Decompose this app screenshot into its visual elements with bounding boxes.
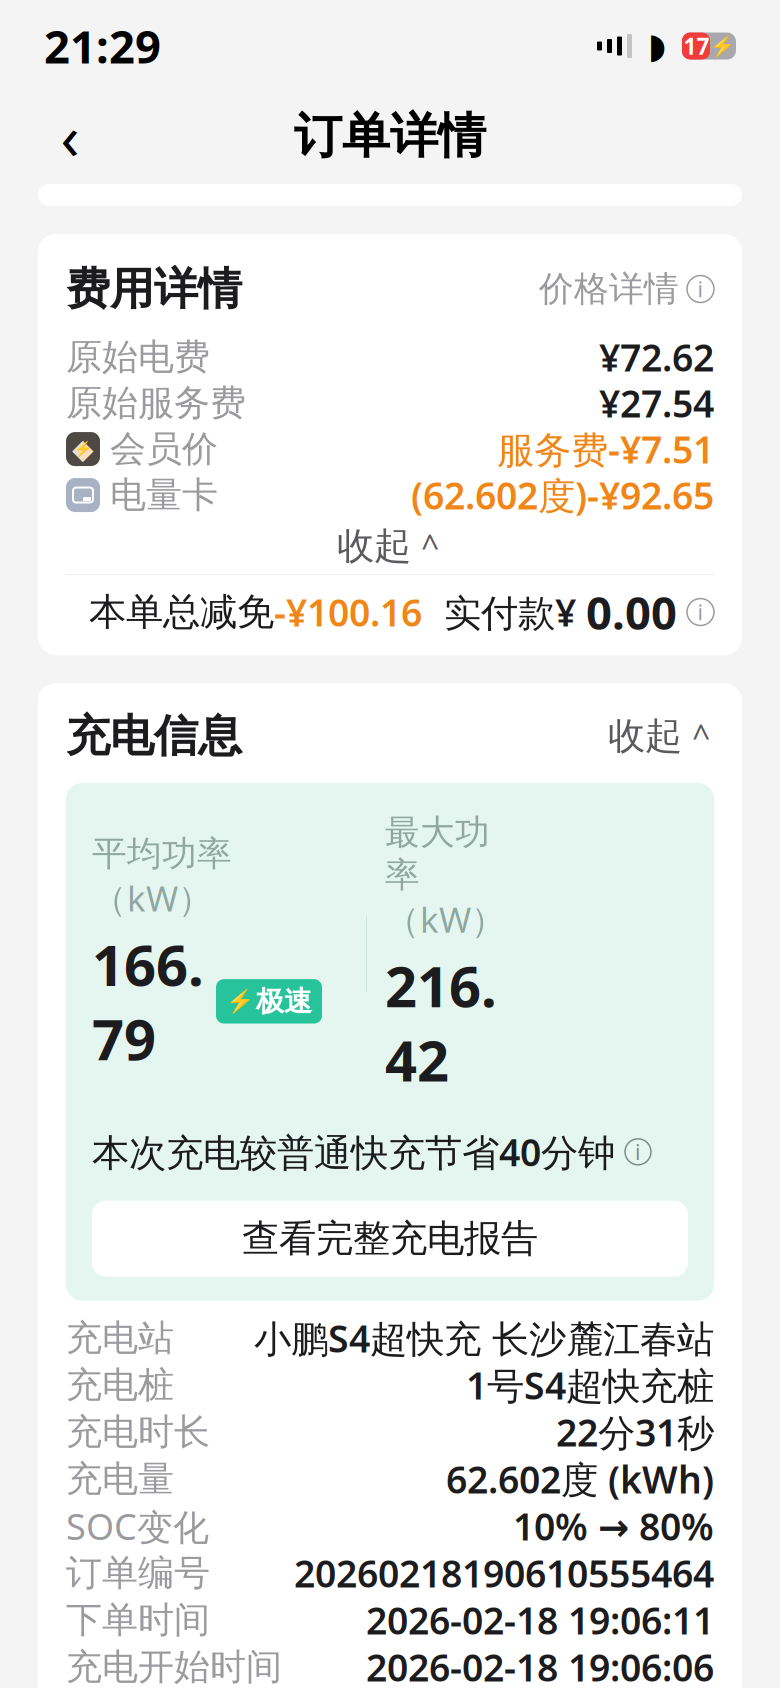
staticText: 价格详情 [539, 268, 679, 310]
staticText: 原始电费 [66, 335, 210, 379]
staticText: 166.79 [92, 927, 204, 1076]
staticText: 费用详情 [66, 262, 242, 316]
staticText: ¥72.62 [599, 332, 714, 382]
staticText: -¥100.16 [274, 587, 422, 637]
staticText: 订单编号 [66, 1551, 210, 1595]
staticText: 1号S4超快充桩 [466, 1360, 714, 1410]
staticText: 会员价 [110, 427, 218, 471]
staticText: 62.602度 (kWh) [446, 1454, 714, 1504]
staticText: ⚡ [226, 988, 254, 1014]
staticText: i [635, 1138, 641, 1166]
staticText: ^ [421, 525, 439, 567]
staticText: 充电时长 [66, 1410, 210, 1454]
staticText: 本单总减免 [89, 589, 274, 635]
staticText: (62.602度)-¥92.65 [411, 470, 714, 520]
staticText: 20260218190610555464 [294, 1548, 714, 1598]
staticText: SOC变化 [66, 1502, 209, 1550]
staticText: 0.00 [586, 582, 677, 642]
staticText: 收起 [608, 713, 682, 759]
staticText: 2026-02-18 19:06:06 [366, 1642, 714, 1688]
staticText: 充电量 [66, 1457, 174, 1501]
staticText: 充电站 [66, 1316, 174, 1360]
staticText: 充电桩 [66, 1363, 174, 1407]
staticText: ◗ [648, 26, 666, 66]
staticText: ‹ [60, 95, 79, 177]
staticText: i [697, 598, 703, 626]
button[interactable]: 价格详情 [539, 268, 714, 310]
staticText: 收起 [337, 523, 411, 569]
staticText: ◆ [72, 433, 94, 465]
staticText: 本次充电较普通快充节省40分钟 [92, 1127, 615, 1177]
staticText: ¥27.54 [599, 378, 714, 428]
staticText: 21:29 [44, 16, 161, 76]
staticText: 订单详情 [294, 106, 486, 165]
staticText: 小鹏S4超快充 长沙麓江春站 [254, 1313, 714, 1363]
staticText: 216.42 [385, 948, 497, 1097]
staticText: 极速 [256, 984, 312, 1019]
staticText: 17 [683, 31, 709, 61]
staticText: 充电开始时间 [66, 1645, 282, 1688]
staticText: 电量卡 [110, 473, 218, 517]
staticText: 查看完整充电报告 [242, 1216, 538, 1262]
button[interactable]: 返回 [38, 104, 102, 168]
staticText: 最大功率（kW） [385, 811, 506, 942]
staticText: 平均功率（kW） [92, 832, 232, 921]
staticText: 下单时间 [66, 1598, 210, 1642]
staticText: ⚡ [74, 441, 92, 457]
staticText: 10% → 80% [513, 1501, 714, 1551]
button[interactable]: 收起 [608, 713, 714, 759]
staticText: 2026-02-18 19:06:11 [366, 1595, 714, 1645]
staticText: 充电信息 [66, 709, 242, 763]
button[interactable]: 收起 [66, 518, 714, 574]
staticText: 实付款¥ [422, 587, 586, 637]
staticText: ^ [692, 715, 710, 757]
staticText: 22分31秒 [556, 1407, 714, 1457]
staticText: ⚡ [709, 35, 734, 57]
staticText: i [697, 275, 703, 303]
button[interactable]: 查看完整充电报告 [92, 1201, 688, 1277]
staticText: 服务费-¥7.51 [497, 424, 714, 474]
staticText: 原始服务费 [66, 381, 246, 425]
